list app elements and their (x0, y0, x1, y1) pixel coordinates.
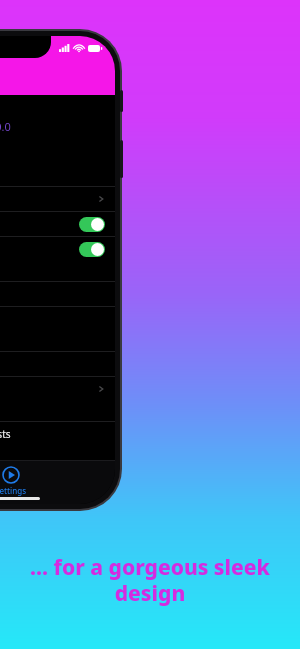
other: Toggle on (79, 217, 105, 232)
button[interactable]: Auto Write Tags (0, 237, 115, 261)
button[interactable]: Acknowledgements (0, 377, 115, 401)
button[interactable]: Haptic Feedback (0, 212, 115, 236)
staticText: 1.0.0 (0, 119, 11, 134)
staticText: … for a gorgeous sleek design (22, 553, 278, 608)
other: Toggle on (79, 242, 105, 257)
staticText: Settings (0, 485, 27, 496)
button[interactable]: Settings (0, 465, 37, 498)
button[interactable]: Amiibo Database (0, 187, 115, 211)
button[interactable]: Bugs & Feature Requests (0, 422, 115, 446)
staticText: Bugs & Feature Requests (0, 427, 11, 441)
